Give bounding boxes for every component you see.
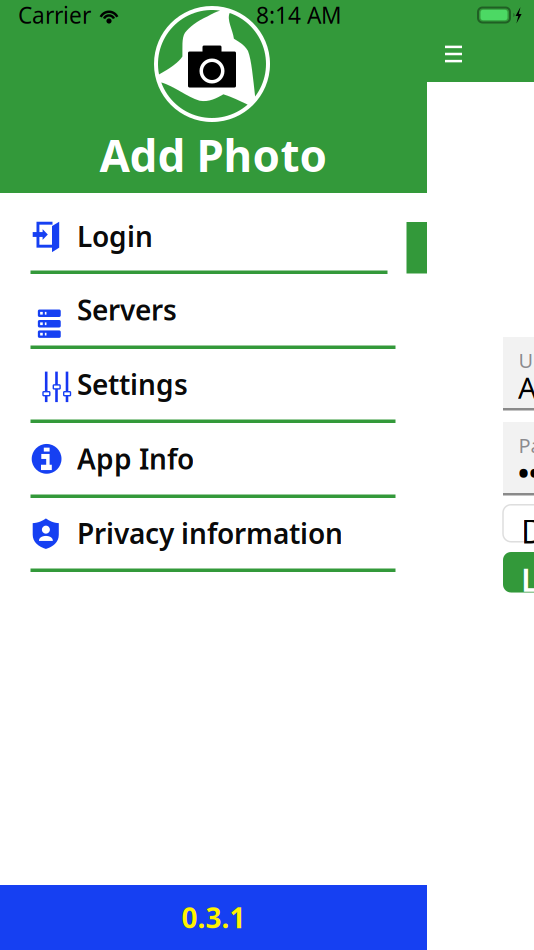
staticText: Servers: [77, 291, 177, 328]
staticText: 0.3.1: [181, 899, 245, 936]
staticText: Admin: [518, 368, 534, 407]
staticText: Username: [518, 347, 534, 374]
staticText: App Info: [77, 440, 194, 477]
staticText: •••••••: [518, 453, 534, 492]
staticText: Password: [518, 432, 534, 459]
staticText: Add Photo: [99, 126, 327, 184]
staticText: Settings: [77, 366, 188, 403]
button[interactable]: App Info: [0, 423, 427, 498]
staticText: Privacy information: [77, 515, 343, 552]
button[interactable]: Privacy information: [0, 498, 427, 572]
button[interactable]: Settings: [0, 349, 427, 423]
button[interactable]: Menu: [431, 32, 476, 76]
staticText: Login: [77, 218, 153, 255]
button[interactable]: Login: [503, 553, 534, 593]
staticText: 8:14 AM: [256, 0, 342, 30]
button[interactable]: 0.3.1: [0, 885, 427, 950]
staticText: Login: [521, 558, 534, 600]
staticText: Demo: [521, 510, 534, 552]
staticText: Carrier: [18, 0, 91, 30]
button[interactable]: Servers: [0, 274, 427, 349]
button[interactable]: Login: [0, 193, 427, 274]
button[interactable]: Demo: [503, 507, 534, 544]
